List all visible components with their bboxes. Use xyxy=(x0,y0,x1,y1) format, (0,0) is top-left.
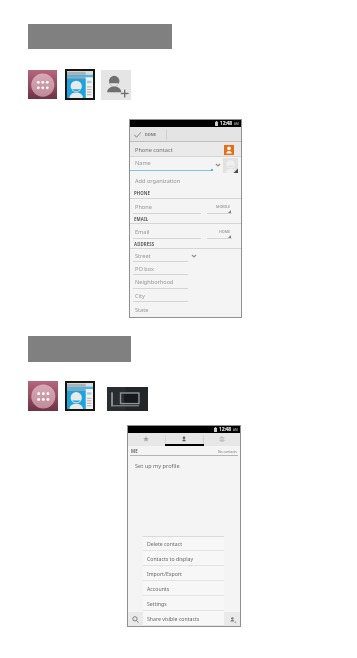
staticText: Neighborhood xyxy=(135,278,174,286)
button[interactable]: Search xyxy=(127,612,143,627)
button[interactable]: Favourites xyxy=(127,433,165,446)
button[interactable]: Contacts xyxy=(67,71,93,98)
staticText: State xyxy=(135,306,149,314)
button[interactable]: Phone contact xyxy=(129,142,242,157)
button[interactable]: PO box xyxy=(129,262,242,275)
button[interactable]: Contacts xyxy=(165,433,203,446)
button[interactable]: Contacts to display xyxy=(143,551,224,566)
staticText: DONE xyxy=(145,132,157,137)
staticText: EMAIL xyxy=(134,216,149,222)
staticText: Name xyxy=(135,159,151,167)
staticText: Import/Export xyxy=(147,570,182,577)
staticText: ME xyxy=(131,448,138,454)
button[interactable]: City xyxy=(129,289,242,302)
button[interactable]: Neighborhood xyxy=(129,275,242,289)
staticText: Share visible contacts xyxy=(147,615,200,622)
button[interactable]: State xyxy=(129,302,242,318)
button[interactable]: Set up my profile xyxy=(127,456,241,480)
staticText: Set up my profile xyxy=(135,462,180,470)
staticText: AM xyxy=(233,428,238,432)
staticText: Phone xyxy=(135,203,152,211)
button[interactable]: All apps xyxy=(28,381,58,411)
button[interactable]: Email xyxy=(129,224,242,239)
button[interactable]: Accounts xyxy=(143,581,224,596)
staticText: AM xyxy=(234,122,239,126)
button[interactable]: Add contact xyxy=(101,70,131,100)
staticText: Delete contact xyxy=(147,540,183,547)
staticText: Contacts to display xyxy=(147,555,194,562)
button[interactable]: Contacts xyxy=(67,383,93,409)
staticText: MOBILE xyxy=(216,204,231,209)
button[interactable]: Add organization xyxy=(129,174,242,188)
button[interactable]: Phone xyxy=(129,199,242,214)
button[interactable]: Street xyxy=(129,249,242,262)
button[interactable]: Add contact xyxy=(225,612,241,627)
button[interactable]: Import/Export xyxy=(143,566,224,581)
button[interactable]: Share visible contacts xyxy=(143,611,224,626)
button[interactable]: Groups xyxy=(203,433,241,446)
staticText: ADDRESS xyxy=(134,241,155,247)
staticText: HOME xyxy=(219,229,231,234)
button[interactable]: Delete contact xyxy=(143,536,224,551)
button[interactable]: Recents xyxy=(107,387,148,411)
staticText: City xyxy=(135,292,145,300)
button[interactable]: Add photo xyxy=(223,158,238,173)
staticText: Settings xyxy=(147,600,167,607)
staticText: No contacts xyxy=(218,449,237,454)
staticText: Phone contact xyxy=(135,146,173,154)
staticText: Accounts xyxy=(147,585,170,592)
button[interactable]: Settings xyxy=(143,596,224,611)
button[interactable]: All apps xyxy=(28,70,57,99)
staticText: Add organization xyxy=(135,177,181,185)
staticText: PHONE xyxy=(134,190,151,196)
staticText: 12:48 xyxy=(220,120,233,127)
button[interactable]: DONE xyxy=(129,127,242,142)
staticText: Street xyxy=(135,252,151,260)
staticText: Email xyxy=(135,228,150,236)
staticText: PO box xyxy=(135,265,154,273)
staticText: 12:48 xyxy=(219,426,232,433)
